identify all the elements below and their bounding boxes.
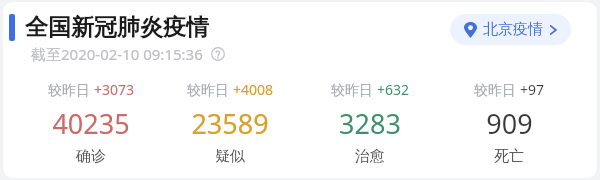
staticText: 全国新冠肺炎疫情 <box>25 13 209 42</box>
staticText: 疑似 <box>215 147 245 166</box>
button[interactable]: 较昨日 <box>168 80 292 166</box>
staticText: +632 <box>377 80 410 99</box>
staticText: +3073 <box>94 80 135 99</box>
button[interactable]: 较昨日 <box>447 80 571 166</box>
staticText: 23589 <box>191 105 269 142</box>
button[interactable]: 较昨日 <box>29 80 153 166</box>
staticText: 较昨日 <box>187 80 233 99</box>
staticText: 确诊 <box>76 147 106 166</box>
staticText: 909 <box>486 105 533 142</box>
staticText: 较昨日 <box>474 80 520 99</box>
staticText: +97 <box>520 80 545 99</box>
staticText: 3283 <box>339 105 401 142</box>
staticText: 死亡 <box>494 147 524 166</box>
staticText: 北京疫情 <box>483 20 543 39</box>
button[interactable]: 北京疫情 <box>450 14 571 45</box>
staticText: 40235 <box>52 105 130 142</box>
staticText: 较昨日 <box>48 80 94 99</box>
button[interactable]: 数据说明 <box>31 44 225 64</box>
staticText: +4008 <box>233 80 274 99</box>
staticText: 较昨日 <box>331 80 377 99</box>
staticText: 截至2020-02-10 09:15:36 <box>31 44 203 64</box>
button[interactable]: 较昨日 <box>308 80 432 166</box>
staticText: 治愈 <box>355 147 385 166</box>
